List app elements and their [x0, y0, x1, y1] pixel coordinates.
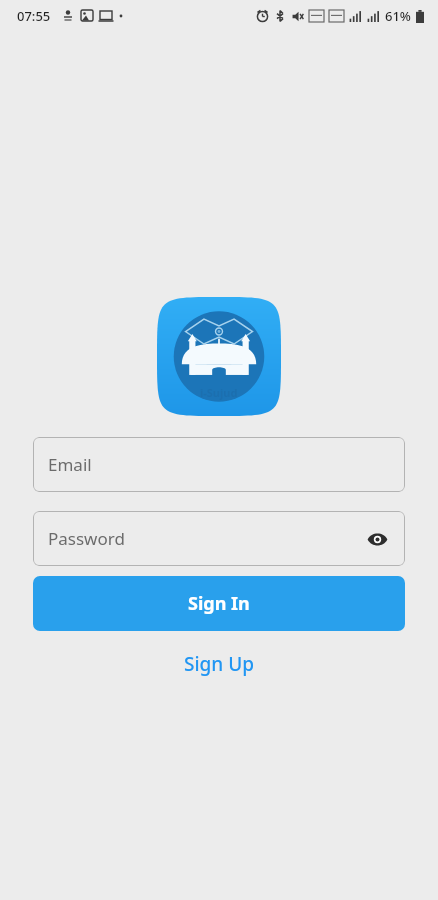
- staticText: 07:55: [17, 7, 51, 25]
- staticText: Sign In: [188, 591, 250, 616]
- button[interactable]: Sign In: [33, 576, 405, 631]
- button[interactable]: Show password: [362, 524, 392, 554]
- staticText: 61%: [385, 7, 411, 25]
- staticText: i-Sujud: [200, 385, 238, 400]
- button[interactable]: Email: [33, 437, 405, 492]
- staticText: Sign Up: [184, 651, 255, 677]
- staticText: Password: [48, 527, 125, 550]
- staticText: Email: [48, 453, 92, 476]
- button[interactable]: Sign Up: [33, 641, 405, 687]
- button[interactable]: Password: [33, 511, 405, 566]
